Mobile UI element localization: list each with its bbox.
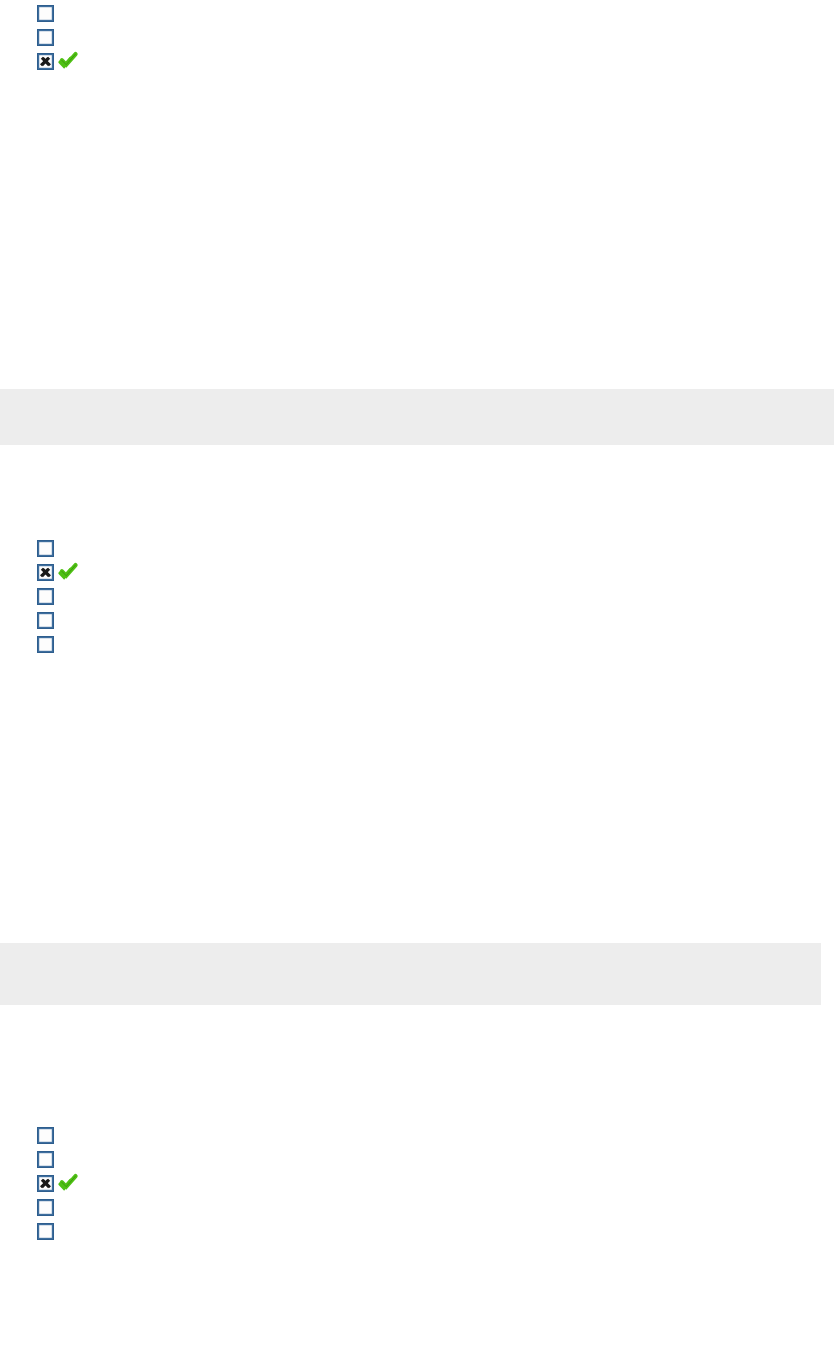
button[interactable]: Unchecked option [0,1147,834,1171]
button[interactable]: Unchecked option [37,29,54,46]
button[interactable]: Unchecked option [37,540,54,557]
button[interactable]: Unchecked option [0,536,834,560]
button[interactable]: Checked option [37,564,54,581]
button[interactable]: Unchecked option [0,1219,834,1243]
button[interactable]: Unchecked option [0,25,834,49]
button[interactable]: Unchecked option [37,612,54,629]
button[interactable]: Unchecked option [0,1195,834,1219]
button[interactable]: Unchecked option [37,1223,54,1240]
button[interactable]: Checked option [0,560,834,584]
button[interactable]: Unchecked option [37,5,54,22]
button[interactable]: Unchecked option [37,1199,54,1216]
button[interactable]: Unchecked option [0,608,834,632]
button[interactable]: Checked option [0,1171,834,1195]
button[interactable]: Unchecked option [0,1,834,25]
button[interactable]: Unchecked option [37,588,54,605]
button[interactable]: Unchecked option [0,584,834,608]
button[interactable]: Checked option [37,1175,54,1192]
button[interactable]: Correct answer [59,1173,77,1191]
button[interactable]: Unchecked option [37,1151,54,1168]
button[interactable]: Checked option [37,53,54,70]
button[interactable]: Correct answer [59,51,77,69]
button[interactable]: Unchecked option [37,636,54,653]
button[interactable]: Correct answer [59,562,77,580]
button[interactable]: Unchecked option [0,1123,834,1147]
button[interactable]: Checked option [0,49,834,73]
button[interactable]: Unchecked option [37,1127,54,1144]
button[interactable]: Unchecked option [0,632,834,656]
